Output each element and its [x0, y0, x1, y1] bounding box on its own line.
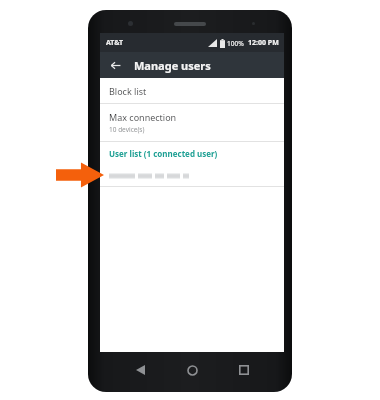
staticText: Max connection	[109, 111, 177, 123]
button[interactable]	[100, 165, 284, 186]
button[interactable]: Back	[128, 358, 152, 382]
staticText: AT&T	[106, 38, 124, 48]
button[interactable]: Back	[104, 54, 126, 76]
button[interactable]: Block list	[100, 78, 284, 103]
other: Pointer arrow	[56, 162, 104, 188]
staticText: Manage users	[134, 58, 211, 73]
button[interactable]: Max connection	[100, 104, 284, 141]
button[interactable]: Home	[180, 358, 204, 382]
staticText: 100%	[227, 39, 244, 48]
button[interactable]: Recent apps	[232, 358, 256, 382]
staticText: User list (1 connected user)	[109, 148, 218, 159]
staticText: Block list	[109, 85, 147, 97]
staticText: 12:00 PM	[248, 38, 279, 48]
staticText: 10 device(s)	[109, 125, 145, 134]
button[interactable]: User list (1 connected user)	[100, 142, 284, 165]
